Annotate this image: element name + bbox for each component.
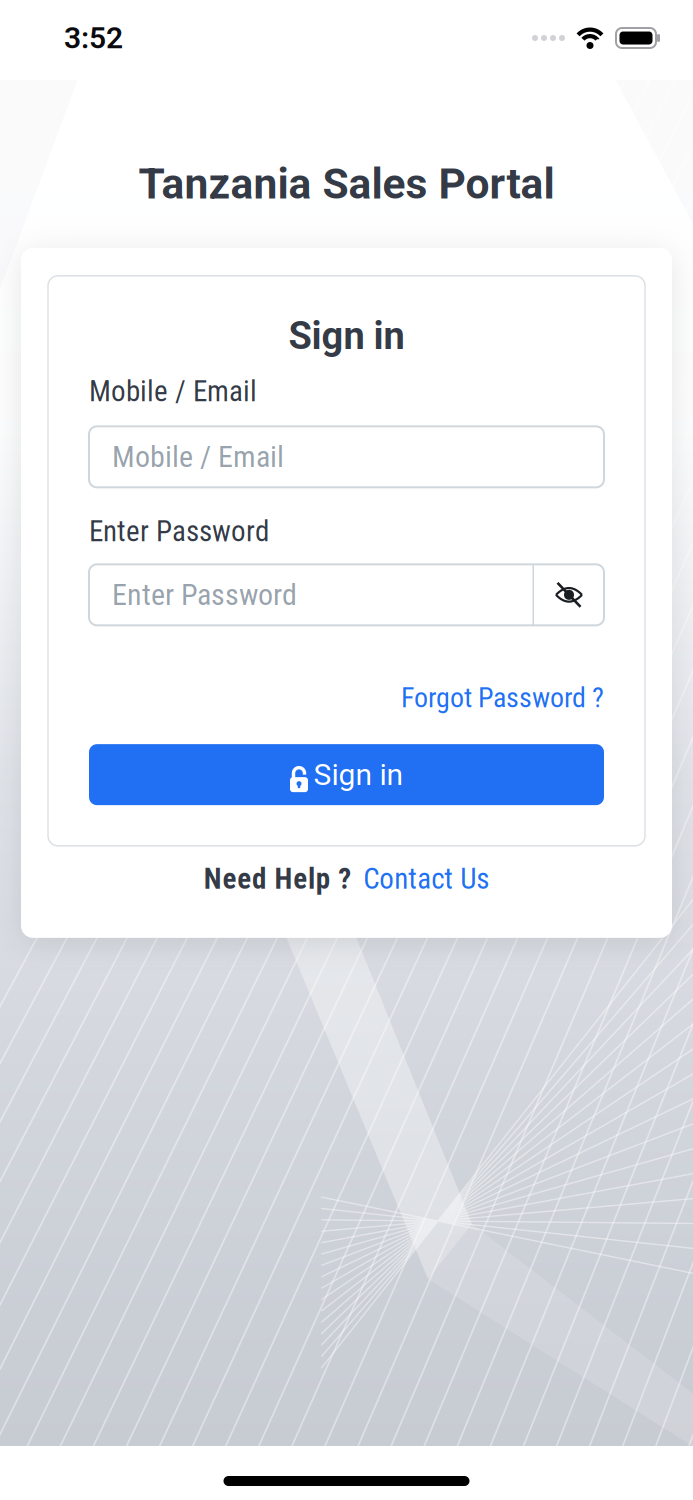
staticText: Enter Password: [112, 577, 297, 612]
staticText: Sign in: [313, 757, 403, 792]
staticText: Mobile / Email: [112, 439, 284, 474]
staticText: Enter Password: [89, 514, 269, 548]
staticText: Tanzania Sales Portal: [138, 159, 554, 209]
staticText: Mobile / Email: [89, 374, 257, 408]
staticText: Sign in: [288, 314, 404, 358]
staticText: Contact Us: [363, 862, 489, 896]
staticText: 3:52: [64, 20, 123, 56]
staticText: Forgot Password ?: [401, 681, 604, 714]
staticText: Need Help ?: [204, 862, 351, 896]
